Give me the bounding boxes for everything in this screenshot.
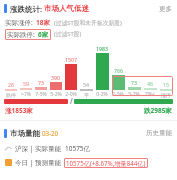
staticText: 实际涨停: [5, 18, 33, 27]
staticText: 2-0% [65, 91, 77, 98]
button[interactable] [112, 76, 173, 96]
staticText: 7-5% [35, 91, 47, 98]
staticText: >7% [21, 91, 31, 98]
button[interactable]: 历史量能 [146, 129, 172, 137]
staticText: 历史量能 [146, 129, 172, 137]
button[interactable]: 1507 [63, 56, 78, 98]
button[interactable]: 59 [18, 80, 33, 98]
staticText: 2-5% [112, 91, 124, 98]
staticText: 73 [131, 79, 137, 86]
staticText: 5-2% [50, 91, 62, 98]
staticText: 59 [23, 80, 29, 87]
staticText: 03-20 [42, 129, 59, 137]
staticText: 今日 | 预测量能 [15, 158, 61, 167]
staticText: 10575亿(+8.67%,增量844亿) [66, 159, 146, 167]
staticText: 15 [163, 81, 169, 88]
staticText: 7%< [145, 91, 155, 98]
button[interactable]: 15 [158, 81, 174, 98]
button[interactable]: 766 [110, 67, 126, 98]
staticText: (过滤ST股和未开板次新股) [54, 19, 122, 27]
staticText: 26 [8, 81, 14, 88]
staticText: 390 [51, 74, 60, 81]
staticText: 涨停 [161, 92, 171, 98]
button[interactable]: 更多 [159, 5, 172, 13]
staticText: 18家 [36, 18, 50, 27]
staticText: 跌2985家 [144, 106, 172, 115]
staticText: 46 [147, 80, 153, 87]
staticText: 0-2% [96, 91, 108, 98]
staticText: 市场人气低迷 [44, 4, 89, 13]
staticText: 涨跌统计: [10, 4, 43, 14]
staticText: 6家 [38, 30, 49, 39]
button[interactable]: 73 [33, 79, 48, 98]
button[interactable]: 1983 [94, 45, 110, 98]
staticText: 跌停 [6, 92, 16, 98]
staticText: 1983 [96, 45, 108, 52]
staticText: 沪深 | 实际量能 [15, 144, 61, 153]
staticText: (过滤ST股) [54, 30, 82, 38]
other: 沪深指数图标 [5, 145, 12, 152]
button[interactable]: 沪深指数图标 [5, 141, 91, 155]
staticText: 涨1853家 [5, 106, 33, 115]
staticText: 5-7% [128, 91, 140, 98]
button[interactable]: 26 [3, 81, 18, 98]
button[interactable]: 54 [78, 81, 94, 98]
button[interactable]: 390 [48, 74, 63, 98]
staticText: 1507 [65, 56, 77, 63]
staticText: 54 [83, 81, 89, 88]
button[interactable]: 10575亿(+8.67%,增量844亿) [66, 159, 146, 167]
staticText: 市场量能 [10, 129, 40, 138]
staticText: 平 [84, 92, 89, 98]
button[interactable]: 46 [142, 80, 158, 98]
staticText: 10575亿 [65, 144, 91, 153]
staticText: 766 [114, 67, 123, 74]
button[interactable]: 实际跌停: [7, 30, 49, 39]
button[interactable]: 73 [126, 79, 142, 98]
staticText: 73 [38, 79, 44, 86]
staticText: 实际跌停: [7, 30, 35, 39]
staticText: 更多 [159, 5, 172, 13]
